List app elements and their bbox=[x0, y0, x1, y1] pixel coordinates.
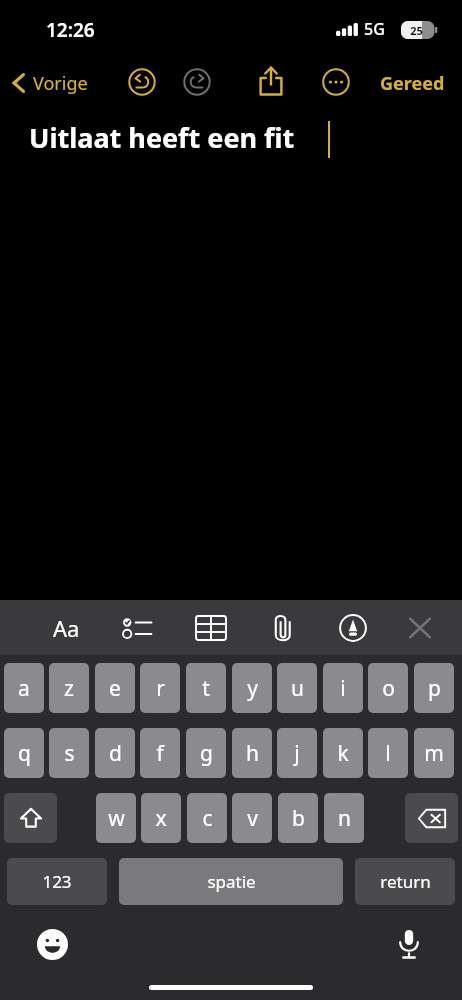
staticText: c bbox=[202, 804, 213, 833]
staticText: 123 bbox=[42, 870, 72, 893]
button[interactable]: t bbox=[186, 663, 226, 713]
staticText: x bbox=[155, 804, 167, 833]
staticText: w bbox=[108, 804, 125, 833]
button[interactable]: c bbox=[187, 793, 227, 843]
staticText: y bbox=[247, 674, 258, 703]
button[interactable]: Vorige bbox=[6, 62, 108, 104]
button[interactable]: y bbox=[232, 663, 272, 713]
staticText: return bbox=[380, 870, 431, 893]
button[interactable]: f bbox=[140, 728, 180, 778]
button[interactable]: b bbox=[278, 793, 318, 843]
staticText: b bbox=[292, 804, 305, 833]
staticText: g bbox=[200, 739, 213, 768]
button[interactable]: return bbox=[355, 858, 455, 905]
staticText: s bbox=[64, 739, 75, 768]
staticText: j bbox=[294, 739, 300, 768]
staticText: n bbox=[338, 804, 351, 833]
button[interactable]: Shift bbox=[4, 793, 57, 843]
button[interactable]: u bbox=[277, 663, 317, 713]
button[interactable]: h bbox=[232, 728, 272, 778]
staticText: l bbox=[385, 739, 391, 768]
staticText: r bbox=[156, 674, 165, 703]
staticText: 12:26 bbox=[46, 17, 95, 43]
button[interactable]: g bbox=[186, 728, 226, 778]
button[interactable]: More options bbox=[318, 64, 354, 100]
button[interactable]: Backspace bbox=[405, 793, 458, 843]
staticText: h bbox=[246, 739, 259, 768]
staticText: k bbox=[337, 739, 349, 768]
button[interactable]: z bbox=[49, 663, 89, 713]
button[interactable]: v bbox=[232, 793, 272, 843]
staticText: e bbox=[109, 674, 121, 703]
button[interactable]: Table bbox=[183, 600, 239, 655]
button[interactable]: Aa bbox=[38, 600, 94, 655]
button[interactable]: Emoji bbox=[28, 920, 76, 968]
button[interactable]: Close keyboard bbox=[392, 600, 448, 655]
staticText: Aa bbox=[53, 613, 80, 643]
button[interactable]: o bbox=[368, 663, 408, 713]
staticText: v bbox=[247, 804, 258, 833]
button[interactable]: d bbox=[95, 728, 135, 778]
staticText: m bbox=[424, 739, 444, 768]
staticText: 5G bbox=[364, 18, 385, 40]
button[interactable]: Redo bbox=[179, 64, 215, 100]
button[interactable]: q bbox=[4, 728, 44, 778]
staticText: p bbox=[428, 674, 441, 703]
staticText: u bbox=[291, 674, 304, 703]
staticText: a bbox=[18, 674, 30, 703]
button[interactable]: s bbox=[49, 728, 89, 778]
button[interactable]: i bbox=[323, 663, 363, 713]
staticText: Vorige bbox=[33, 71, 88, 96]
button[interactable]: Gereed bbox=[368, 62, 456, 104]
button[interactable]: r bbox=[140, 663, 180, 713]
staticText: 25 bbox=[410, 23, 423, 37]
staticText: i bbox=[340, 674, 346, 703]
button[interactable]: p bbox=[414, 663, 454, 713]
staticText: spatie bbox=[207, 870, 256, 893]
staticText: Uitlaat heeft een fit bbox=[29, 119, 295, 156]
button[interactable]: l bbox=[368, 728, 408, 778]
button[interactable]: x bbox=[141, 793, 181, 843]
staticText: z bbox=[64, 674, 74, 703]
button[interactable]: Markup bbox=[325, 600, 381, 655]
button[interactable]: w bbox=[96, 793, 136, 843]
button[interactable]: a bbox=[4, 663, 44, 713]
button[interactable]: Checklist bbox=[110, 600, 166, 655]
staticText: d bbox=[109, 739, 122, 768]
button[interactable]: j bbox=[277, 728, 317, 778]
staticText: t bbox=[202, 674, 210, 703]
button[interactable]: Dictate bbox=[385, 920, 433, 968]
staticText: Gereed bbox=[380, 71, 445, 96]
button[interactable]: spatie bbox=[119, 858, 343, 905]
button[interactable]: Share bbox=[252, 62, 290, 100]
staticText: f bbox=[156, 739, 164, 768]
button[interactable]: m bbox=[414, 728, 454, 778]
button[interactable]: k bbox=[323, 728, 363, 778]
button[interactable]: n bbox=[324, 793, 364, 843]
button[interactable]: Undo bbox=[124, 64, 160, 100]
staticText: q bbox=[18, 739, 31, 768]
staticText: o bbox=[382, 674, 395, 703]
button[interactable]: 123 bbox=[7, 858, 107, 905]
button[interactable]: e bbox=[95, 663, 135, 713]
button[interactable]: Attach bbox=[255, 600, 311, 655]
